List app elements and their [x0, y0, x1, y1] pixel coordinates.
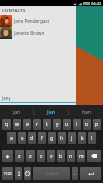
staticText: p	[95, 121, 99, 128]
staticText: w	[15, 121, 19, 128]
staticText: u	[65, 121, 69, 128]
button[interactable]: i	[73, 119, 81, 130]
button[interactable]: ?123	[2, 167, 13, 180]
button[interactable]: o	[83, 119, 91, 130]
staticText: .	[74, 170, 76, 177]
button[interactable]: s	[18, 132, 26, 144]
staticText: a	[10, 135, 13, 142]
button[interactable]: jan	[0, 105, 33, 119]
staticText: v	[50, 153, 53, 160]
button[interactable]: m	[77, 150, 85, 162]
button[interactable]: r	[33, 119, 41, 130]
staticText: b	[59, 153, 63, 160]
staticText: r	[36, 121, 39, 128]
staticText: English	[46, 171, 58, 176]
staticText: c	[40, 153, 43, 160]
button[interactable]: t	[43, 119, 51, 130]
staticText: d	[30, 135, 34, 142]
button[interactable]: f	[38, 132, 46, 144]
button[interactable]: j	[68, 132, 76, 144]
staticText: n	[69, 153, 73, 160]
staticText: Jan	[47, 109, 55, 116]
staticText: 04:42	[91, 1, 102, 6]
button[interactable]: z	[15, 150, 24, 162]
button[interactable]: q	[2, 119, 11, 130]
button[interactable]: Emoji	[24, 167, 31, 180]
button[interactable]: .	[72, 167, 78, 180]
staticText: g	[50, 135, 54, 142]
button[interactable]: Shift	[2, 150, 13, 162]
button[interactable]: b	[57, 150, 65, 162]
staticText: Jan	[2, 95, 9, 101]
staticText: CONTACTS	[2, 8, 26, 14]
staticText: han	[82, 109, 91, 116]
staticText: x	[29, 153, 32, 160]
button[interactable]: Janette Brown	[0, 27, 76, 39]
button[interactable]: Enter	[80, 167, 101, 180]
button[interactable]: g	[48, 132, 56, 144]
staticText: m	[79, 153, 84, 160]
button[interactable]: l	[88, 132, 96, 144]
button[interactable]: k	[78, 132, 86, 144]
button[interactable]: w	[13, 119, 21, 130]
staticText: Jane Pendergast	[14, 18, 50, 24]
staticText: z	[18, 153, 21, 160]
button[interactable]: c	[37, 150, 45, 162]
button[interactable]: n	[67, 150, 75, 162]
staticText: e	[26, 121, 29, 128]
button[interactable]: v	[47, 150, 55, 162]
button[interactable]: han	[69, 105, 103, 119]
button[interactable]: Voice input	[15, 167, 22, 180]
button[interactable]: Backspace	[87, 150, 101, 162]
button[interactable]: u	[63, 119, 71, 130]
staticText: k	[81, 135, 84, 142]
staticText: l	[91, 135, 93, 142]
button[interactable]: h	[58, 132, 66, 144]
staticText: j	[71, 135, 73, 142]
staticText: t	[46, 121, 48, 128]
staticText: s	[21, 135, 24, 142]
button[interactable]: Space	[33, 167, 70, 180]
button[interactable]: Jane Pendergast	[0, 15, 76, 27]
button[interactable]: a	[7, 132, 16, 144]
staticText: jan	[13, 109, 21, 116]
staticText: ?123	[4, 171, 12, 176]
staticText: Janette Brown	[14, 30, 45, 36]
staticText: y	[56, 121, 59, 128]
button[interactable]: p	[93, 119, 101, 130]
button[interactable]: d	[28, 132, 36, 144]
staticText: q	[5, 121, 9, 128]
button[interactable]: Jan	[34, 105, 68, 119]
staticText: h	[60, 135, 64, 142]
staticText: i	[76, 121, 78, 128]
button[interactable]: x	[26, 150, 35, 162]
staticText: o	[85, 121, 89, 128]
staticText: f	[41, 135, 43, 142]
button[interactable]: e	[23, 119, 31, 130]
button[interactable]: y	[53, 119, 61, 130]
